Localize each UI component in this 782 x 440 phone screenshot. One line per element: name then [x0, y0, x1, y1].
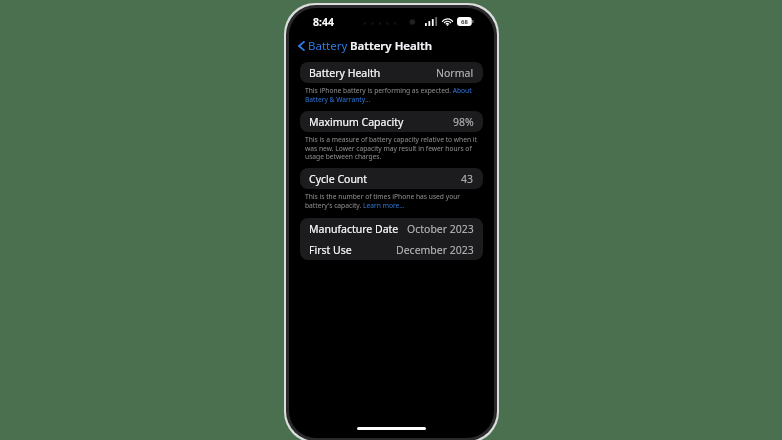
staticText: 98% [453, 115, 474, 129]
staticText: This is the number of times iPhone has u… [305, 192, 479, 210]
staticText: Maximum Capacity [309, 115, 404, 129]
button[interactable]: First Use [300, 239, 483, 260]
staticText: First Use [309, 243, 352, 257]
staticText: October 2023 [407, 222, 474, 236]
button[interactable]: Battery [289, 36, 354, 56]
staticText: Battery Health [350, 38, 433, 54]
staticText: Battery Health [309, 66, 381, 80]
staticText: Normal [436, 66, 474, 80]
button[interactable]: Cycle Count [300, 168, 483, 189]
button[interactable]: Manufacture Date [300, 218, 483, 239]
staticText: Cycle Count [309, 172, 368, 186]
staticText: December 2023 [396, 243, 474, 257]
button[interactable]: Battery Health [300, 62, 483, 83]
other: Home indicator [357, 427, 426, 430]
button[interactable]: Maximum Capacity [300, 111, 483, 132]
staticText: Battery [308, 38, 348, 54]
staticText: Manufacture Date [309, 222, 399, 236]
staticText: 68 [461, 18, 468, 26]
staticText: 43 [461, 172, 474, 186]
staticText: This is a measure of battery capacity re… [305, 135, 479, 161]
staticText: This iPhone battery is performing as exp… [305, 86, 479, 104]
staticText: 8:44 [313, 15, 334, 29]
